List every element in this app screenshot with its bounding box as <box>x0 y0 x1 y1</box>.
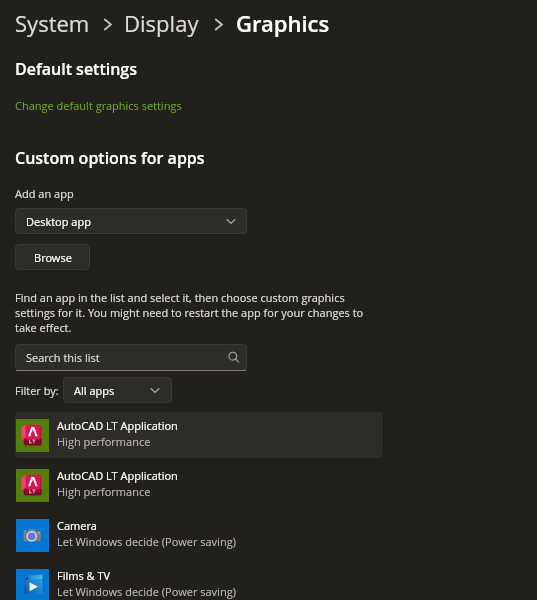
staticText: All apps <box>74 383 115 398</box>
staticText: Default settings <box>15 58 137 80</box>
button[interactable]: Change default graphics settings <box>15 98 182 113</box>
button[interactable]: Display <box>124 8 199 38</box>
staticText: Graphics <box>236 8 330 38</box>
staticText: Let Windows decide (Power saving) <box>57 584 236 599</box>
staticText: Camera <box>57 518 97 533</box>
staticText: Filter by: <box>15 383 59 398</box>
button[interactable]: Desktop app <box>15 208 247 234</box>
staticText: Browse <box>34 250 72 265</box>
button[interactable]: AutoCAD LT Application <box>15 412 383 458</box>
button[interactable]: System <box>0 8 90 38</box>
button[interactable]: Films & TV <box>15 562 383 600</box>
staticText: Add an app <box>15 186 74 201</box>
staticText: Films & TV <box>57 568 111 583</box>
button[interactable]: AutoCAD LT Application <box>15 462 383 508</box>
button[interactable]: Camera <box>15 512 383 558</box>
button[interactable]: All apps <box>63 377 172 403</box>
staticText: AutoCAD LT Application <box>57 468 178 483</box>
staticText: Custom options for apps <box>15 147 205 169</box>
staticText: Desktop app <box>26 214 91 229</box>
other: Search <box>227 351 240 364</box>
staticText: High performance <box>57 434 151 449</box>
staticText: AutoCAD LT Application <box>57 418 178 433</box>
staticText: Find an app in the list and select it, t… <box>15 290 371 335</box>
button[interactable]: Search this list <box>15 344 247 371</box>
staticText: Search this list <box>26 350 100 365</box>
staticText: Let Windows decide (Power saving) <box>57 534 236 549</box>
button[interactable]: Browse <box>15 244 90 270</box>
staticText: High performance <box>57 484 151 499</box>
